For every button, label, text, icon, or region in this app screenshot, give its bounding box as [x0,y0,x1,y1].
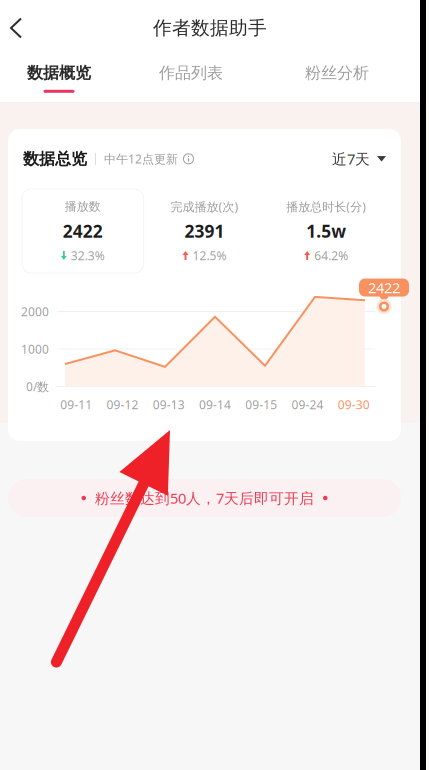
button[interactable]: 完成播放(次) [144,189,265,273]
staticText: 32.3% [71,247,105,263]
button[interactable]: 播放总时长(分) [265,189,387,273]
staticText: 1000 [21,341,49,357]
button[interactable]: 播放数 [22,189,144,273]
button[interactable]: 近7天 [332,149,386,169]
staticText: 09-11 [60,396,92,412]
staticText: 09-13 [153,396,185,412]
staticText: 1.5w [306,219,346,242]
staticText: 数据概览 [27,63,91,83]
staticText: 09-30 [338,396,370,412]
staticText: 数据总览 [23,149,87,169]
staticText: 粉丝分析 [305,63,369,83]
staticText: 64.2% [314,247,348,263]
staticText: 2391 [184,219,224,242]
button[interactable]: 粉丝分析 [264,56,410,102]
staticText: 播放数 [65,199,101,214]
staticText: 2422 [368,278,400,297]
staticText: 09-12 [106,396,138,412]
staticText: 作者数据助手 [153,16,267,39]
staticText: 2000 [21,304,49,319]
staticText: 0/数 [26,379,49,394]
button[interactable]: Back [0,0,37,56]
staticText: 作品列表 [159,63,223,83]
staticText: 完成播放(次) [170,198,238,214]
staticText: 09-15 [245,396,277,412]
button[interactable]: 数据概览 [0,56,118,102]
staticText: 粉丝数达到50人，7天后即可开启 [95,488,314,508]
staticText: 播放总时长(分) [286,198,366,214]
staticText: 09-24 [292,396,324,412]
staticText: 中午12点更新 [104,151,178,167]
staticText: 近7天 [332,149,370,169]
staticText: 09-14 [199,396,231,412]
staticText: 2422 [63,219,103,242]
button[interactable]: 作品列表 [118,56,264,102]
staticText: 12.5% [192,247,226,263]
